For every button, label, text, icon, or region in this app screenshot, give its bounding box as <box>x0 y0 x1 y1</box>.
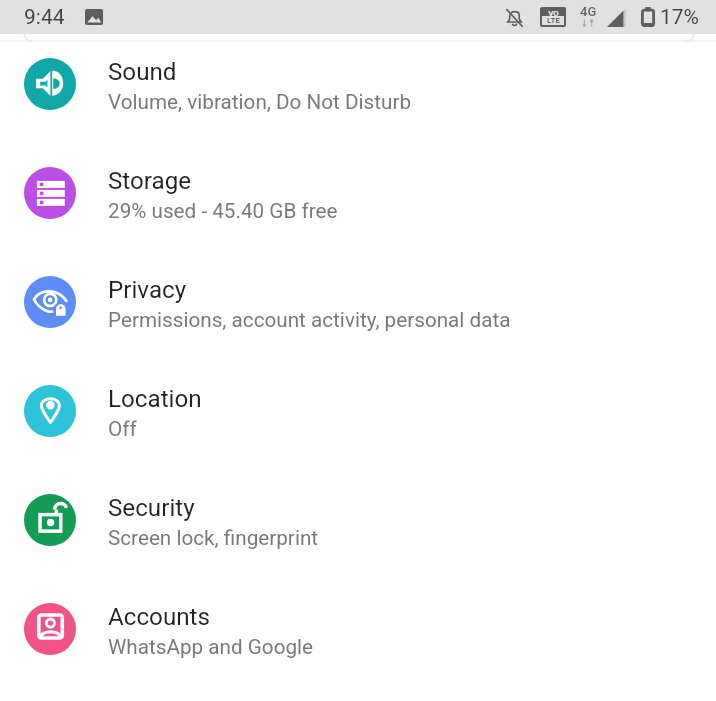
staticText: Accounts <box>108 603 210 631</box>
staticText: WhatsApp and Google <box>108 635 314 659</box>
other: Storage icon <box>24 167 76 219</box>
staticText: 9:44 <box>24 5 65 30</box>
staticText: Storage <box>108 167 192 195</box>
staticText: Location <box>108 385 202 413</box>
staticText: Privacy <box>108 276 187 304</box>
other: Sound icon <box>24 58 76 110</box>
button[interactable]: Location icon <box>0 366 716 475</box>
staticText: Off <box>108 417 137 441</box>
other: Accounts icon <box>24 603 76 655</box>
staticText: Sound <box>108 58 177 86</box>
staticText: VO <box>548 9 559 17</box>
staticText: Permissions, account activity, personal … <box>108 308 511 332</box>
staticText: Security <box>108 494 195 522</box>
staticText: 4G <box>580 4 597 19</box>
button[interactable]: Security icon <box>0 475 716 584</box>
other: Privacy icon <box>24 276 76 328</box>
staticText: Volume, vibration, Do Not Disturb <box>108 90 412 114</box>
button[interactable]: Privacy icon <box>0 257 716 366</box>
staticText: LTE <box>547 16 560 25</box>
staticText: Screen lock, fingerprint <box>108 526 319 550</box>
button[interactable]: Accounts icon <box>0 584 716 693</box>
staticText: 17% <box>660 5 699 30</box>
other: Location icon <box>24 385 76 437</box>
other: Security icon <box>24 494 76 546</box>
button[interactable]: Storage icon <box>0 148 716 257</box>
button[interactable]: Sound icon <box>0 39 716 148</box>
staticText: 29% used - 45.40 GB free <box>108 199 338 223</box>
